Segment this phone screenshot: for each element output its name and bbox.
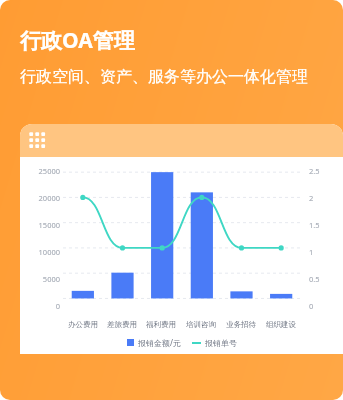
staticText: 0.5 xyxy=(309,274,320,284)
staticText: 2.5 xyxy=(309,166,320,176)
button[interactable]: Apps xyxy=(20,124,343,354)
staticText: 组织建设 xyxy=(266,320,296,329)
staticText: 2 xyxy=(309,193,314,203)
staticText: 10000 xyxy=(38,247,60,257)
staticText: 业务招待 xyxy=(226,320,256,329)
staticText: 行政空间、资产、服务等办公一体化管理 xyxy=(20,67,308,87)
staticText: 差旅费用 xyxy=(107,320,137,329)
staticText: 0 xyxy=(55,301,60,311)
staticText: 报销金额/元 xyxy=(138,337,181,348)
staticText: 15000 xyxy=(38,220,60,230)
staticText: 25000 xyxy=(38,166,60,176)
staticText: 报销单号 xyxy=(205,338,237,348)
staticText: 福利费用 xyxy=(146,320,176,329)
staticText: 1 xyxy=(309,247,314,257)
staticText: 培训咨询 xyxy=(186,320,216,329)
staticText: 0 xyxy=(309,301,314,311)
other: Apps xyxy=(29,132,47,150)
staticText: 5000 xyxy=(42,274,60,284)
staticText: 1.5 xyxy=(309,220,320,230)
staticText: 办公费用 xyxy=(68,320,98,329)
staticText: 20000 xyxy=(38,193,60,203)
staticText: 行政OA管理 xyxy=(20,26,135,55)
